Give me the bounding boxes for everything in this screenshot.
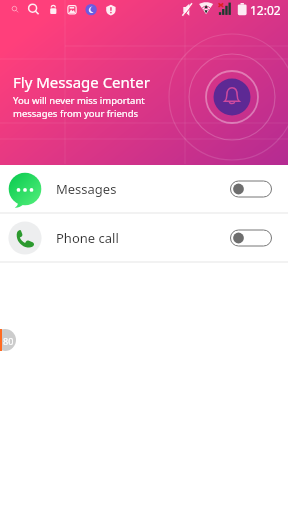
staticText: You will never miss important messages f…: [13, 94, 145, 120]
staticText: Phone call: [56, 229, 119, 247]
button[interactable]: Messages: [0, 165, 288, 212]
staticText: Fly Message Center: [13, 72, 150, 92]
button[interactable]: Battery 80 percent: [0, 329, 16, 351]
staticText: 80: [3, 335, 14, 347]
staticText: 12:02: [250, 2, 281, 18]
staticText: Messages: [56, 180, 117, 198]
button[interactable]: Phone call: [0, 214, 288, 261]
